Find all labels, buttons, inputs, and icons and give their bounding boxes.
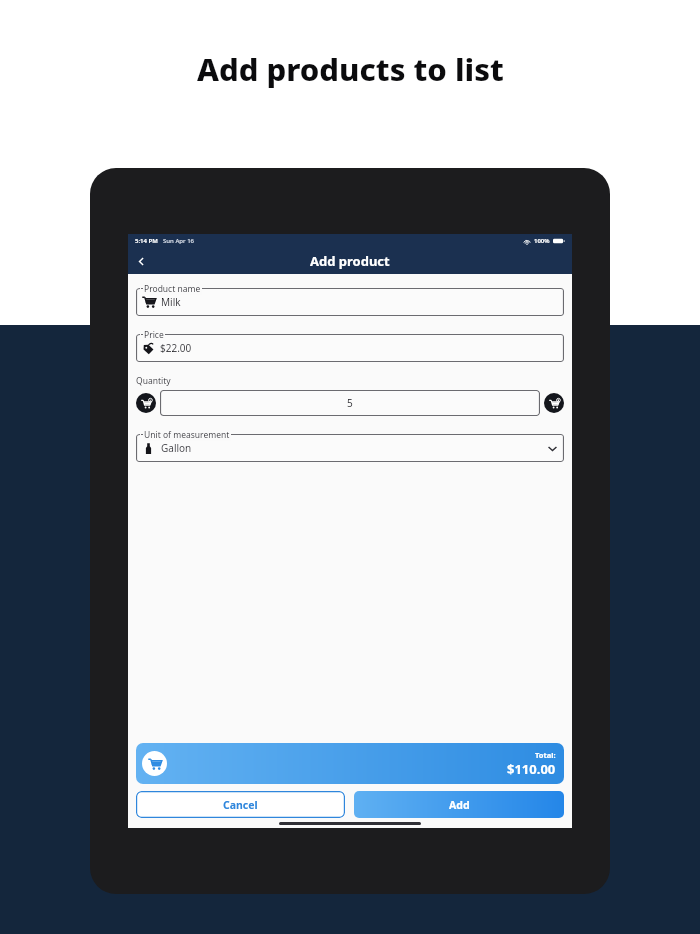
staticText: 5	[347, 396, 353, 410]
staticText: Quantity	[136, 375, 171, 387]
staticText: Milk	[161, 295, 181, 309]
staticText: Product name	[144, 283, 201, 295]
staticText: $22.00	[160, 341, 192, 355]
staticText: Unit of measurement	[144, 429, 230, 441]
button[interactable]: Milk	[136, 288, 564, 316]
staticText: Add	[449, 798, 470, 812]
staticText: Price	[144, 329, 164, 341]
button[interactable]: Decrease quantity	[136, 393, 156, 413]
staticText: $110.00	[507, 760, 556, 778]
button[interactable]: Back	[128, 248, 154, 274]
button[interactable]: Increase quantity	[544, 393, 564, 413]
button[interactable]: 5	[160, 390, 540, 416]
button[interactable]: Add	[354, 791, 564, 818]
staticText: 100%	[534, 237, 550, 245]
button[interactable]: Gallon	[136, 434, 564, 462]
staticText: 5:14 PM	[135, 237, 158, 245]
button[interactable]: Total:	[136, 743, 564, 784]
staticText: Total:	[535, 750, 556, 760]
staticText: Cancel	[223, 798, 258, 812]
staticText: Sun Apr 16	[163, 237, 194, 245]
staticText: Add product	[310, 252, 390, 270]
staticText: Gallon	[161, 441, 192, 455]
button[interactable]: Cancel	[136, 791, 345, 818]
staticText: Add products to list	[197, 48, 504, 90]
button[interactable]: $22.00	[136, 334, 564, 362]
